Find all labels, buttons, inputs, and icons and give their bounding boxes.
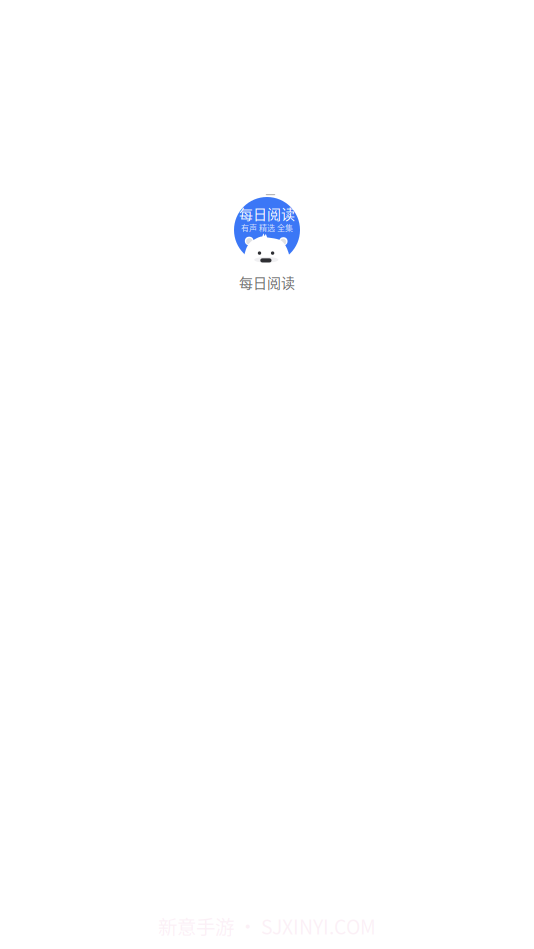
staticText: 新意手游 · SJXINYI.COM	[158, 912, 376, 940]
staticText: 每日阅读	[239, 272, 295, 292]
staticText: 有声 精选 全集	[241, 222, 293, 233]
staticText: 每日阅读	[239, 203, 295, 224]
